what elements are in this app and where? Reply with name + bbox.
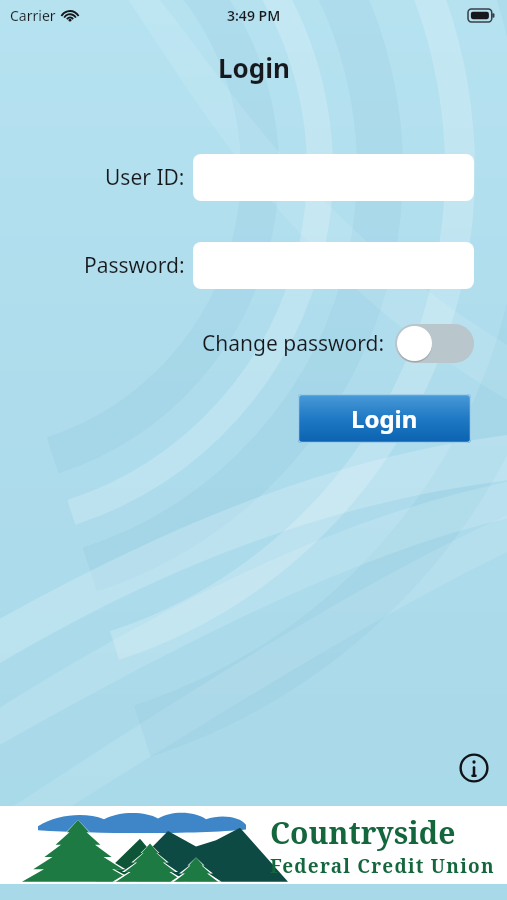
staticText: 3:49 PM: [227, 6, 281, 25]
button[interactable]: [193, 242, 474, 289]
button[interactable]: Login: [298, 394, 471, 443]
staticText: Login: [351, 402, 418, 435]
button[interactable]: [193, 154, 474, 201]
staticText: Federal Credit Union: [270, 853, 495, 879]
staticText: Countryside: [270, 812, 456, 853]
staticText: User ID:: [105, 163, 185, 192]
staticText: Change password:: [202, 329, 385, 358]
staticText: Password:: [84, 251, 185, 280]
button[interactable]: Change password toggle, off: [395, 324, 474, 363]
staticText: Login: [218, 50, 290, 85]
button[interactable]: Countryside: [0, 806, 507, 884]
button[interactable]: Information: [457, 751, 491, 785]
staticText: Carrier: [10, 6, 56, 25]
